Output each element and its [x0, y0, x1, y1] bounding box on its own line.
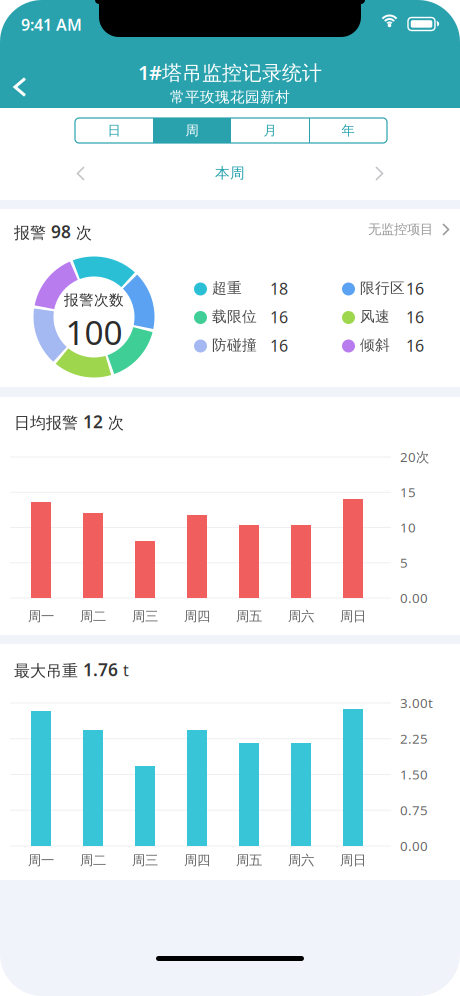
staticText: 限行区 [360, 279, 405, 297]
staticText: 周三 [132, 852, 158, 868]
staticText: 1.76 [83, 658, 118, 681]
staticText: 15 [400, 483, 416, 501]
staticText: 16 [406, 335, 424, 356]
button[interactable] [68, 158, 94, 189]
staticText: 16 [406, 278, 424, 299]
staticText: 周一 [28, 852, 54, 868]
button[interactable] [366, 158, 392, 189]
staticText: 周五 [236, 608, 262, 624]
button[interactable] [0, 65, 40, 109]
staticText: 风速 [360, 307, 390, 325]
staticText: 周四 [184, 852, 210, 868]
staticText: 16 [270, 306, 288, 328]
staticText: 周三 [132, 608, 158, 624]
staticText: 20次 [400, 448, 429, 466]
staticText: 9:41 AM [21, 14, 82, 35]
staticText: 98 [51, 220, 71, 243]
staticText: 本周 [215, 164, 245, 182]
staticText: 周六 [288, 608, 314, 624]
staticText: 载限位 [212, 307, 257, 325]
staticText: 周五 [236, 852, 262, 868]
staticText: 1.50 [400, 765, 428, 783]
staticText: 10 [400, 518, 416, 536]
staticText: 0.00 [400, 589, 428, 607]
staticText: 报警 [14, 223, 46, 243]
staticText: 报警次数 [64, 291, 124, 309]
button[interactable]: 周 [153, 118, 231, 143]
staticText: 周四 [184, 608, 210, 624]
staticText: 16 [270, 335, 288, 356]
staticText: 最大吊重 [14, 661, 78, 681]
staticText: 3.00t [400, 694, 433, 712]
staticText: 周二 [80, 852, 106, 868]
staticText: 常平玫瑰花园新村 [170, 88, 290, 106]
button[interactable]: 月 [231, 118, 309, 143]
staticText: 防碰撞 [212, 336, 257, 354]
staticText: 周日 [340, 852, 366, 868]
staticText: 2.25 [400, 730, 428, 747]
staticText: 日 [107, 122, 120, 139]
staticText: 次 [108, 413, 124, 433]
staticText: 日均报警 [14, 413, 78, 433]
button[interactable]: 日 [75, 118, 153, 143]
staticText: 周日 [340, 608, 366, 624]
staticText: 月 [263, 122, 276, 139]
staticText: t [123, 659, 129, 681]
staticText: 12 [83, 410, 103, 433]
staticText: 0.00 [400, 837, 428, 855]
staticText: 1#塔吊监控记录统计 [138, 59, 322, 86]
staticText: 16 [406, 306, 424, 328]
staticText: 周二 [80, 608, 106, 624]
staticText: 18 [270, 278, 288, 299]
staticText: 倾斜 [360, 336, 390, 354]
staticText: 次 [76, 223, 92, 243]
staticText: 5 [400, 554, 408, 571]
staticText: 周 [185, 122, 198, 139]
button[interactable]: 年 [309, 118, 387, 143]
staticText: 超重 [212, 279, 242, 297]
staticText: 100 [65, 310, 122, 354]
staticText: 无监控项目 [368, 221, 433, 237]
staticText: 周六 [288, 852, 314, 868]
staticText: 0.75 [400, 801, 428, 819]
staticText: 周一 [28, 608, 54, 624]
button[interactable]: 无监控项目 [362, 215, 451, 243]
staticText: 年 [341, 122, 354, 139]
